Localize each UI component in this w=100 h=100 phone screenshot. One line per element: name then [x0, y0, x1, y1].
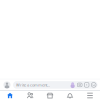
staticText: Write a comment... — [16, 82, 50, 87]
button[interactable]: Marketplace — [40, 91, 60, 100]
button[interactable]: Home — [0, 91, 20, 100]
button[interactable]: Menu — [80, 91, 100, 100]
button[interactable]: Notifications — [60, 91, 80, 100]
button[interactable]: Friends — [20, 91, 40, 100]
